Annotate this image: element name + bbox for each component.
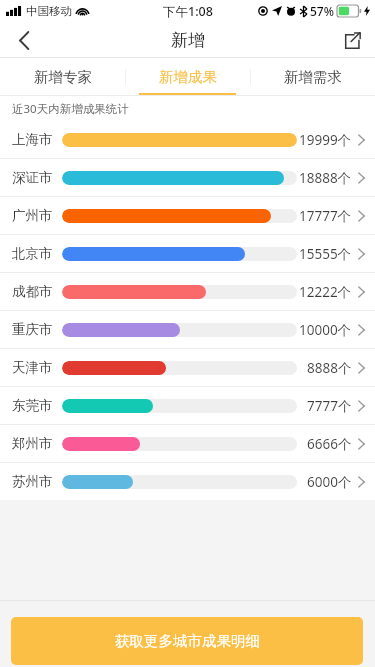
button[interactable]: 天津市 <box>0 349 375 386</box>
staticText: 10000个 <box>299 321 352 339</box>
staticText: 广州市 <box>12 207 53 224</box>
staticText: 17777个 <box>299 207 352 225</box>
staticText: 天津市 <box>12 359 53 376</box>
staticText: 新增 <box>171 30 205 51</box>
button[interactable]: 新增成果 <box>125 58 250 96</box>
staticText: 新增专家 <box>34 68 92 86</box>
button[interactable]: 深证市 <box>0 159 375 196</box>
button[interactable]: 获取更多城市成果明细 <box>11 617 363 665</box>
staticText: 获取更多城市成果明细 <box>115 632 260 650</box>
button[interactable]: 东莞市 <box>0 387 375 424</box>
button[interactable]: 郑州市 <box>0 425 375 462</box>
staticText: 郑州市 <box>12 435 53 452</box>
button[interactable]: Share <box>329 22 375 58</box>
staticText: 北京市 <box>12 245 53 262</box>
staticText: 18888个 <box>299 169 352 187</box>
staticText: 苏州市 <box>12 473 53 490</box>
staticText: 新增成果 <box>159 68 217 86</box>
button[interactable]: 新增需求 <box>250 58 375 96</box>
staticText: 6000个 <box>307 473 352 491</box>
staticText: 19999个 <box>299 131 352 149</box>
staticText: 成都市 <box>12 283 53 300</box>
staticText: 57% <box>310 3 334 19</box>
button[interactable]: 新增专家 <box>0 58 125 96</box>
button[interactable]: Back <box>0 22 48 58</box>
staticText: 8888个 <box>307 359 352 377</box>
staticText: 7777个 <box>307 397 352 415</box>
button[interactable]: 苏州市 <box>0 463 375 500</box>
staticText: 下午1:08 <box>163 3 213 20</box>
staticText: 6666个 <box>307 435 352 453</box>
button[interactable]: 北京市 <box>0 235 375 272</box>
staticText: 15555个 <box>299 245 352 263</box>
staticText: 重庆市 <box>12 321 53 338</box>
button[interactable]: 上海市 <box>0 121 375 158</box>
staticText: 近30天内新增成果统计 <box>12 101 129 117</box>
button[interactable]: 广州市 <box>0 197 375 234</box>
button[interactable]: 重庆市 <box>0 311 375 348</box>
staticText: 新增需求 <box>284 68 342 86</box>
staticText: 12222个 <box>299 283 352 301</box>
staticText: 中国移动 <box>26 4 72 18</box>
staticText: 东莞市 <box>12 397 53 414</box>
button[interactable]: 成都市 <box>0 273 375 310</box>
staticText: 深证市 <box>12 169 53 186</box>
staticText: 上海市 <box>12 131 53 148</box>
